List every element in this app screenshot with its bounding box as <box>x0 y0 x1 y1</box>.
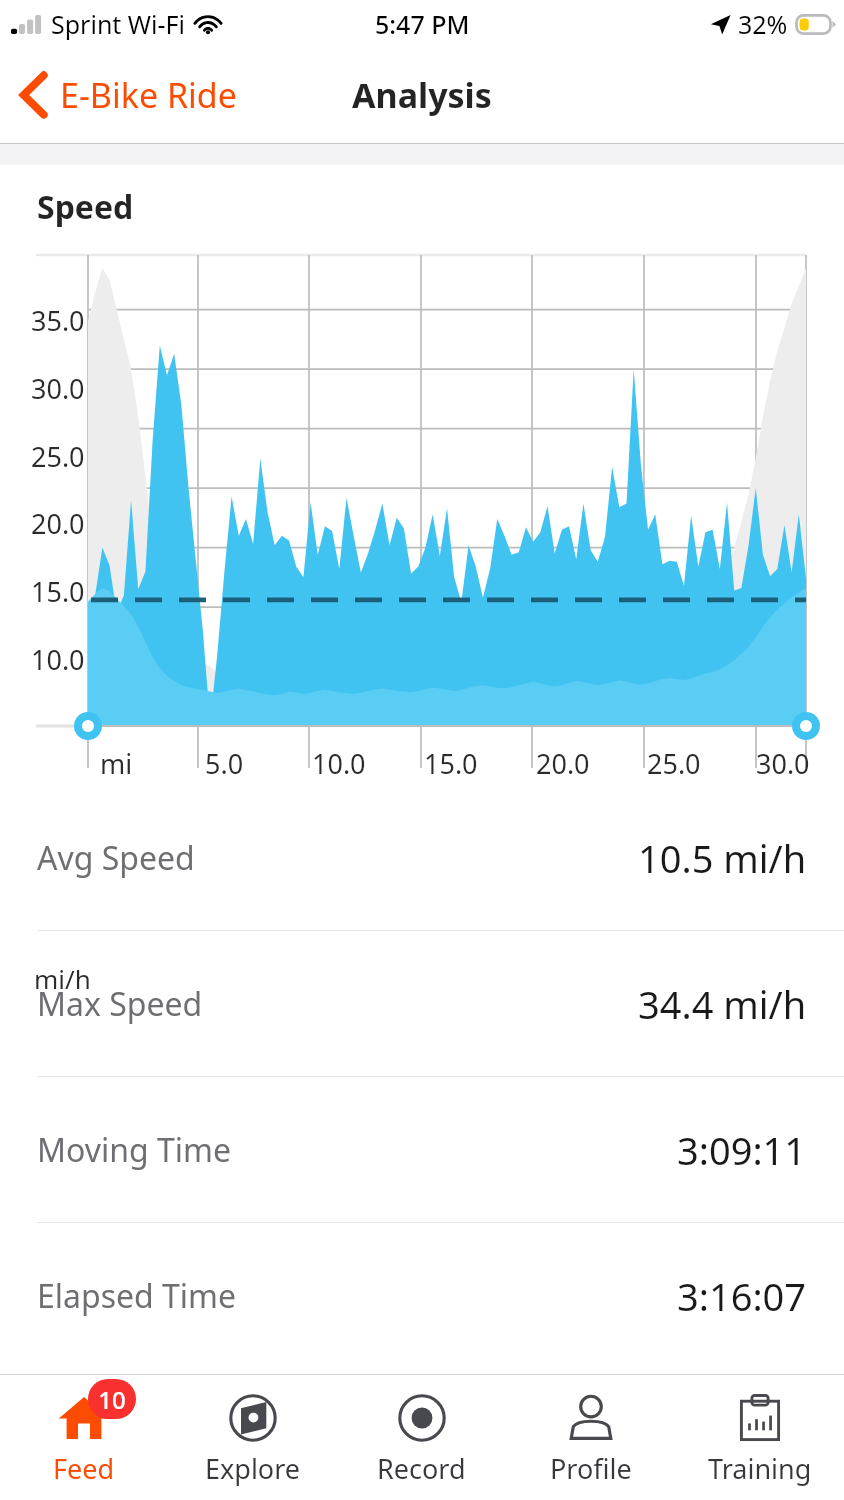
button[interactable]: Profile <box>506 1375 675 1500</box>
button[interactable]: Max Speed <box>0 931 844 1076</box>
staticText: Analysis <box>352 72 492 118</box>
staticText: Feed <box>53 1450 115 1487</box>
staticText: 34.4 mi/h <box>638 978 807 1030</box>
staticText: E-Bike Ride <box>60 72 237 118</box>
staticText: Avg Speed <box>37 836 195 880</box>
button[interactable]: Avg Speed <box>0 785 844 930</box>
button[interactable]: Record <box>337 1375 506 1500</box>
staticText: Max Speed <box>37 982 203 1026</box>
button[interactable]: Elapsed Time <box>0 1223 844 1368</box>
staticText: 10.5 mi/h <box>638 832 807 884</box>
staticText: Moving Time <box>37 1128 232 1172</box>
staticText: 15.0 <box>424 745 478 782</box>
staticText: Elapsed Time <box>37 1274 237 1318</box>
staticText: Training <box>708 1450 812 1487</box>
staticText: 10.0 <box>31 641 85 678</box>
staticText: mi/h <box>34 961 91 996</box>
staticText: Speed <box>37 185 134 229</box>
staticText: 30.0 <box>31 370 85 407</box>
button[interactable]: Training <box>675 1375 844 1500</box>
staticText: Sprint Wi-Fi <box>51 7 186 41</box>
staticText: 3:16:07 <box>677 1270 807 1322</box>
staticText: 10.0 <box>312 745 366 782</box>
staticText: 35.0 <box>31 302 85 339</box>
staticText: 5:47 PM <box>375 7 470 41</box>
staticText: 25.0 <box>31 438 85 475</box>
staticText: mi <box>100 745 133 782</box>
button[interactable]: 10 <box>0 1375 168 1500</box>
staticText: 15.0 <box>31 573 85 610</box>
button[interactable]: Explore <box>168 1375 337 1500</box>
staticText: 30.0 <box>756 745 810 782</box>
other: Back <box>20 72 48 118</box>
staticText: Record <box>377 1450 466 1487</box>
staticText: 20.0 <box>536 745 590 782</box>
staticText: 5.0 <box>205 745 244 782</box>
staticText: 10 <box>98 1383 126 1416</box>
button[interactable]: Back <box>0 62 253 128</box>
staticText: 25.0 <box>647 745 701 782</box>
staticText: Explore <box>205 1450 301 1487</box>
staticText: 32% <box>738 7 788 41</box>
staticText: Profile <box>550 1450 632 1487</box>
staticText: 3:09:11 <box>677 1124 807 1176</box>
button[interactable]: Moving Time <box>0 1077 844 1222</box>
staticText: 20.0 <box>31 505 85 542</box>
